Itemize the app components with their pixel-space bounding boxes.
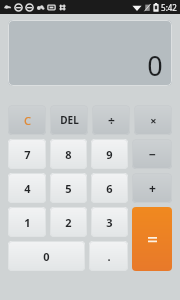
staticText: C xyxy=(24,113,31,128)
button[interactable]: 2 xyxy=(50,207,87,237)
button[interactable]: DEL xyxy=(50,105,88,135)
button[interactable]: 3 xyxy=(91,207,128,237)
button[interactable]: ÷ xyxy=(92,105,130,135)
staticText: 1 xyxy=(24,215,31,230)
staticText: 5 xyxy=(65,181,72,196)
staticText: − xyxy=(149,146,156,162)
staticText: + xyxy=(149,180,156,196)
button[interactable]: 4 xyxy=(8,173,46,203)
button[interactable]: 8 xyxy=(50,139,87,169)
staticText: . xyxy=(107,249,111,264)
staticText: 5:42 xyxy=(161,2,177,13)
button[interactable]: − xyxy=(132,139,172,169)
staticText: × xyxy=(150,113,157,128)
staticText: ÷ xyxy=(108,112,115,128)
button[interactable]: 9 xyxy=(91,139,128,169)
button[interactable]: C xyxy=(8,105,46,135)
staticText: 6 xyxy=(106,181,113,196)
staticText: 0 xyxy=(147,47,163,84)
button[interactable]: 0 xyxy=(8,20,172,86)
button[interactable]: × xyxy=(134,105,172,135)
button[interactable]: 5 xyxy=(50,173,87,203)
staticText: 0 xyxy=(43,249,50,264)
staticText: 9 xyxy=(106,147,113,162)
staticText: 4 xyxy=(24,181,31,196)
button[interactable]: 6 xyxy=(91,173,128,203)
button[interactable]: 1 xyxy=(8,207,46,237)
button[interactable]: . xyxy=(89,241,128,271)
staticText: 2 xyxy=(65,215,72,230)
staticText: 7 xyxy=(24,147,31,162)
button[interactable]: Equals xyxy=(132,207,172,271)
staticText: DEL xyxy=(60,113,79,127)
staticText: 8 xyxy=(65,147,72,162)
button[interactable]: 0 xyxy=(8,241,85,271)
button[interactable]: + xyxy=(132,173,172,203)
button[interactable]: 7 xyxy=(8,139,46,169)
staticText: 3 xyxy=(106,215,113,230)
